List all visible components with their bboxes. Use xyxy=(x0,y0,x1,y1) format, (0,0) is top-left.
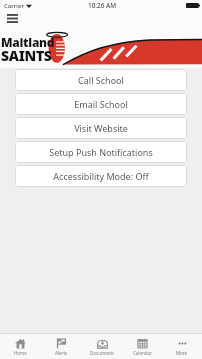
button[interactable]: Home xyxy=(0,334,41,359)
staticText: Alerts xyxy=(55,350,68,356)
button[interactable]: Calendar xyxy=(122,334,162,359)
staticText: Accessibility Mode: Off xyxy=(53,170,149,182)
staticText: Home xyxy=(14,350,27,356)
button[interactable]: Call School xyxy=(15,69,187,91)
button[interactable]: Email School xyxy=(15,93,187,115)
button[interactable]: More xyxy=(162,334,202,359)
staticText: Email School xyxy=(74,98,128,110)
staticText: Calendar xyxy=(133,350,152,356)
staticText: Visit Website xyxy=(74,122,128,134)
staticText: 10:26 AM xyxy=(88,1,117,10)
button[interactable]: Setup Push Notifications xyxy=(15,141,187,163)
staticText: Maitland xyxy=(1,34,55,50)
staticText: Carrier xyxy=(4,2,24,10)
button[interactable]: Alerts xyxy=(41,334,82,359)
button[interactable]: Documents xyxy=(82,334,122,359)
staticText: More xyxy=(176,350,188,356)
staticText: Setup Push Notifications xyxy=(49,146,153,158)
button[interactable]: Open navigation menu xyxy=(2,10,22,26)
staticText: Call School xyxy=(78,74,124,86)
staticText: SAINTS xyxy=(1,46,52,65)
button[interactable]: Visit Website xyxy=(15,117,187,139)
staticText: Documents xyxy=(90,350,115,356)
button[interactable]: Accessibility Mode: Off xyxy=(15,165,187,187)
